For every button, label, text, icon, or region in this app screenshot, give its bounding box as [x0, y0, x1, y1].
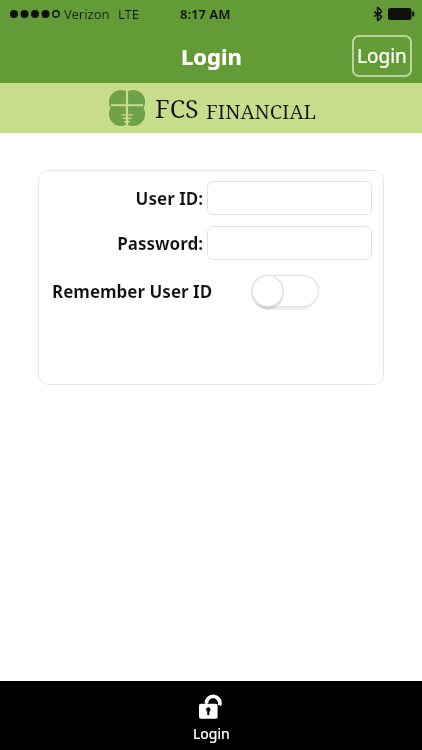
- staticText: Remember User ID: [52, 280, 213, 303]
- button[interactable]: Remember User ID: [38, 271, 384, 311]
- staticText: FINANCIAL: [206, 98, 316, 125]
- staticText: FCS: [155, 91, 199, 125]
- button[interactable]: Login: [352, 35, 412, 77]
- button[interactable]: [207, 181, 372, 215]
- staticText: Verizon: [64, 5, 110, 23]
- staticText: 8:17 AM: [180, 5, 231, 23]
- staticText: Login: [181, 41, 242, 71]
- button[interactable]: Login: [0, 681, 422, 750]
- button[interactable]: Remember User ID toggle: [251, 272, 319, 310]
- staticText: LTE: [118, 5, 140, 23]
- staticText: Login: [357, 43, 407, 69]
- staticText: Login: [193, 724, 230, 743]
- staticText: User ID:: [135, 187, 203, 210]
- button[interactable]: [207, 226, 372, 260]
- staticText: Password:: [117, 232, 203, 255]
